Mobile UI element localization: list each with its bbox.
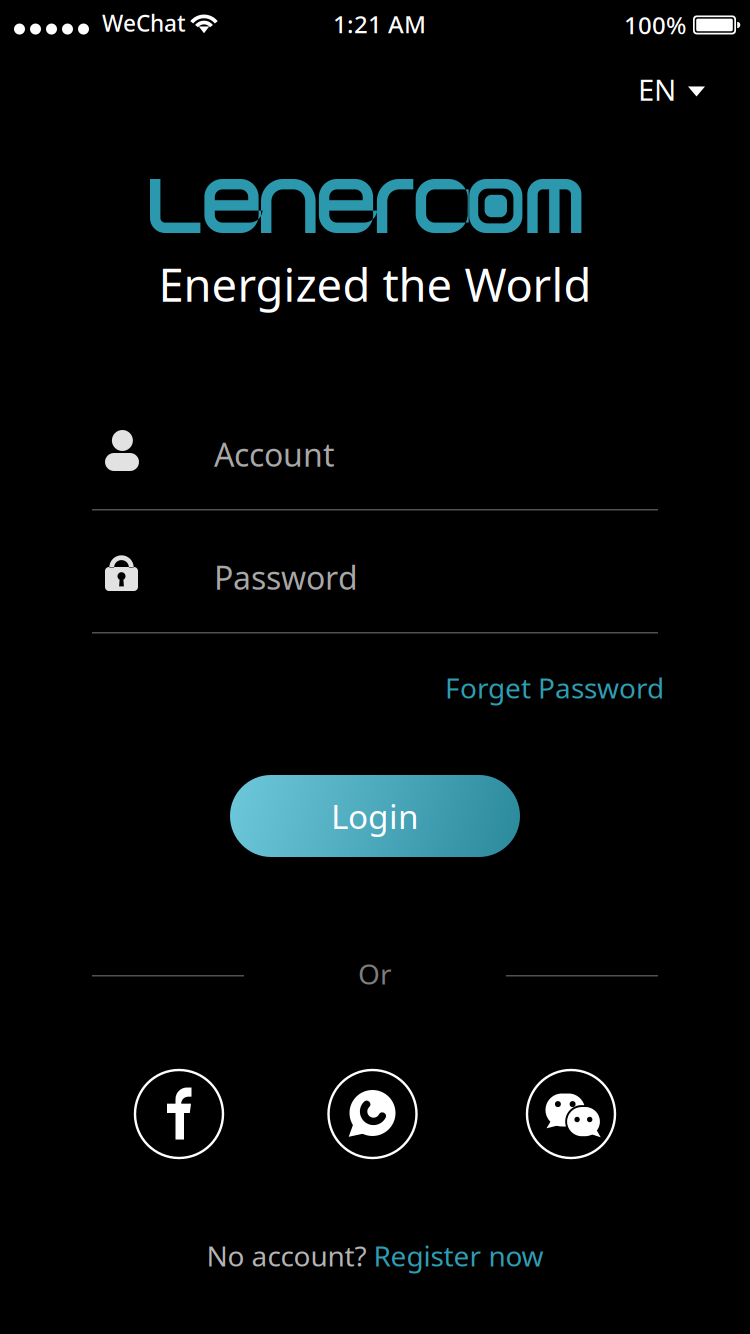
staticText: No account? — [206, 1237, 373, 1274]
button[interactable]: Register now — [373, 1237, 543, 1274]
staticText: Energized the World — [158, 254, 591, 314]
staticText: Forget Password — [445, 669, 664, 706]
staticText: 1:21 AM — [333, 8, 426, 40]
staticText: Or — [358, 955, 392, 992]
button[interactable]: Sign in with WeChat — [526, 1069, 616, 1159]
staticText: EN — [638, 70, 676, 109]
staticText: 100% — [624, 9, 686, 41]
staticText: WeChat — [102, 8, 186, 38]
button[interactable]: Sign in with WhatsApp — [327, 1069, 417, 1159]
button[interactable]: Forget Password — [439, 659, 670, 716]
staticText: Account — [214, 433, 335, 475]
button[interactable]: Sign in with Facebook — [134, 1069, 224, 1159]
button[interactable]: EN — [622, 58, 721, 121]
button[interactable]: Login — [230, 775, 520, 857]
staticText: Password — [214, 556, 358, 598]
staticText: Register now — [373, 1237, 543, 1274]
staticText: Login — [331, 794, 419, 838]
